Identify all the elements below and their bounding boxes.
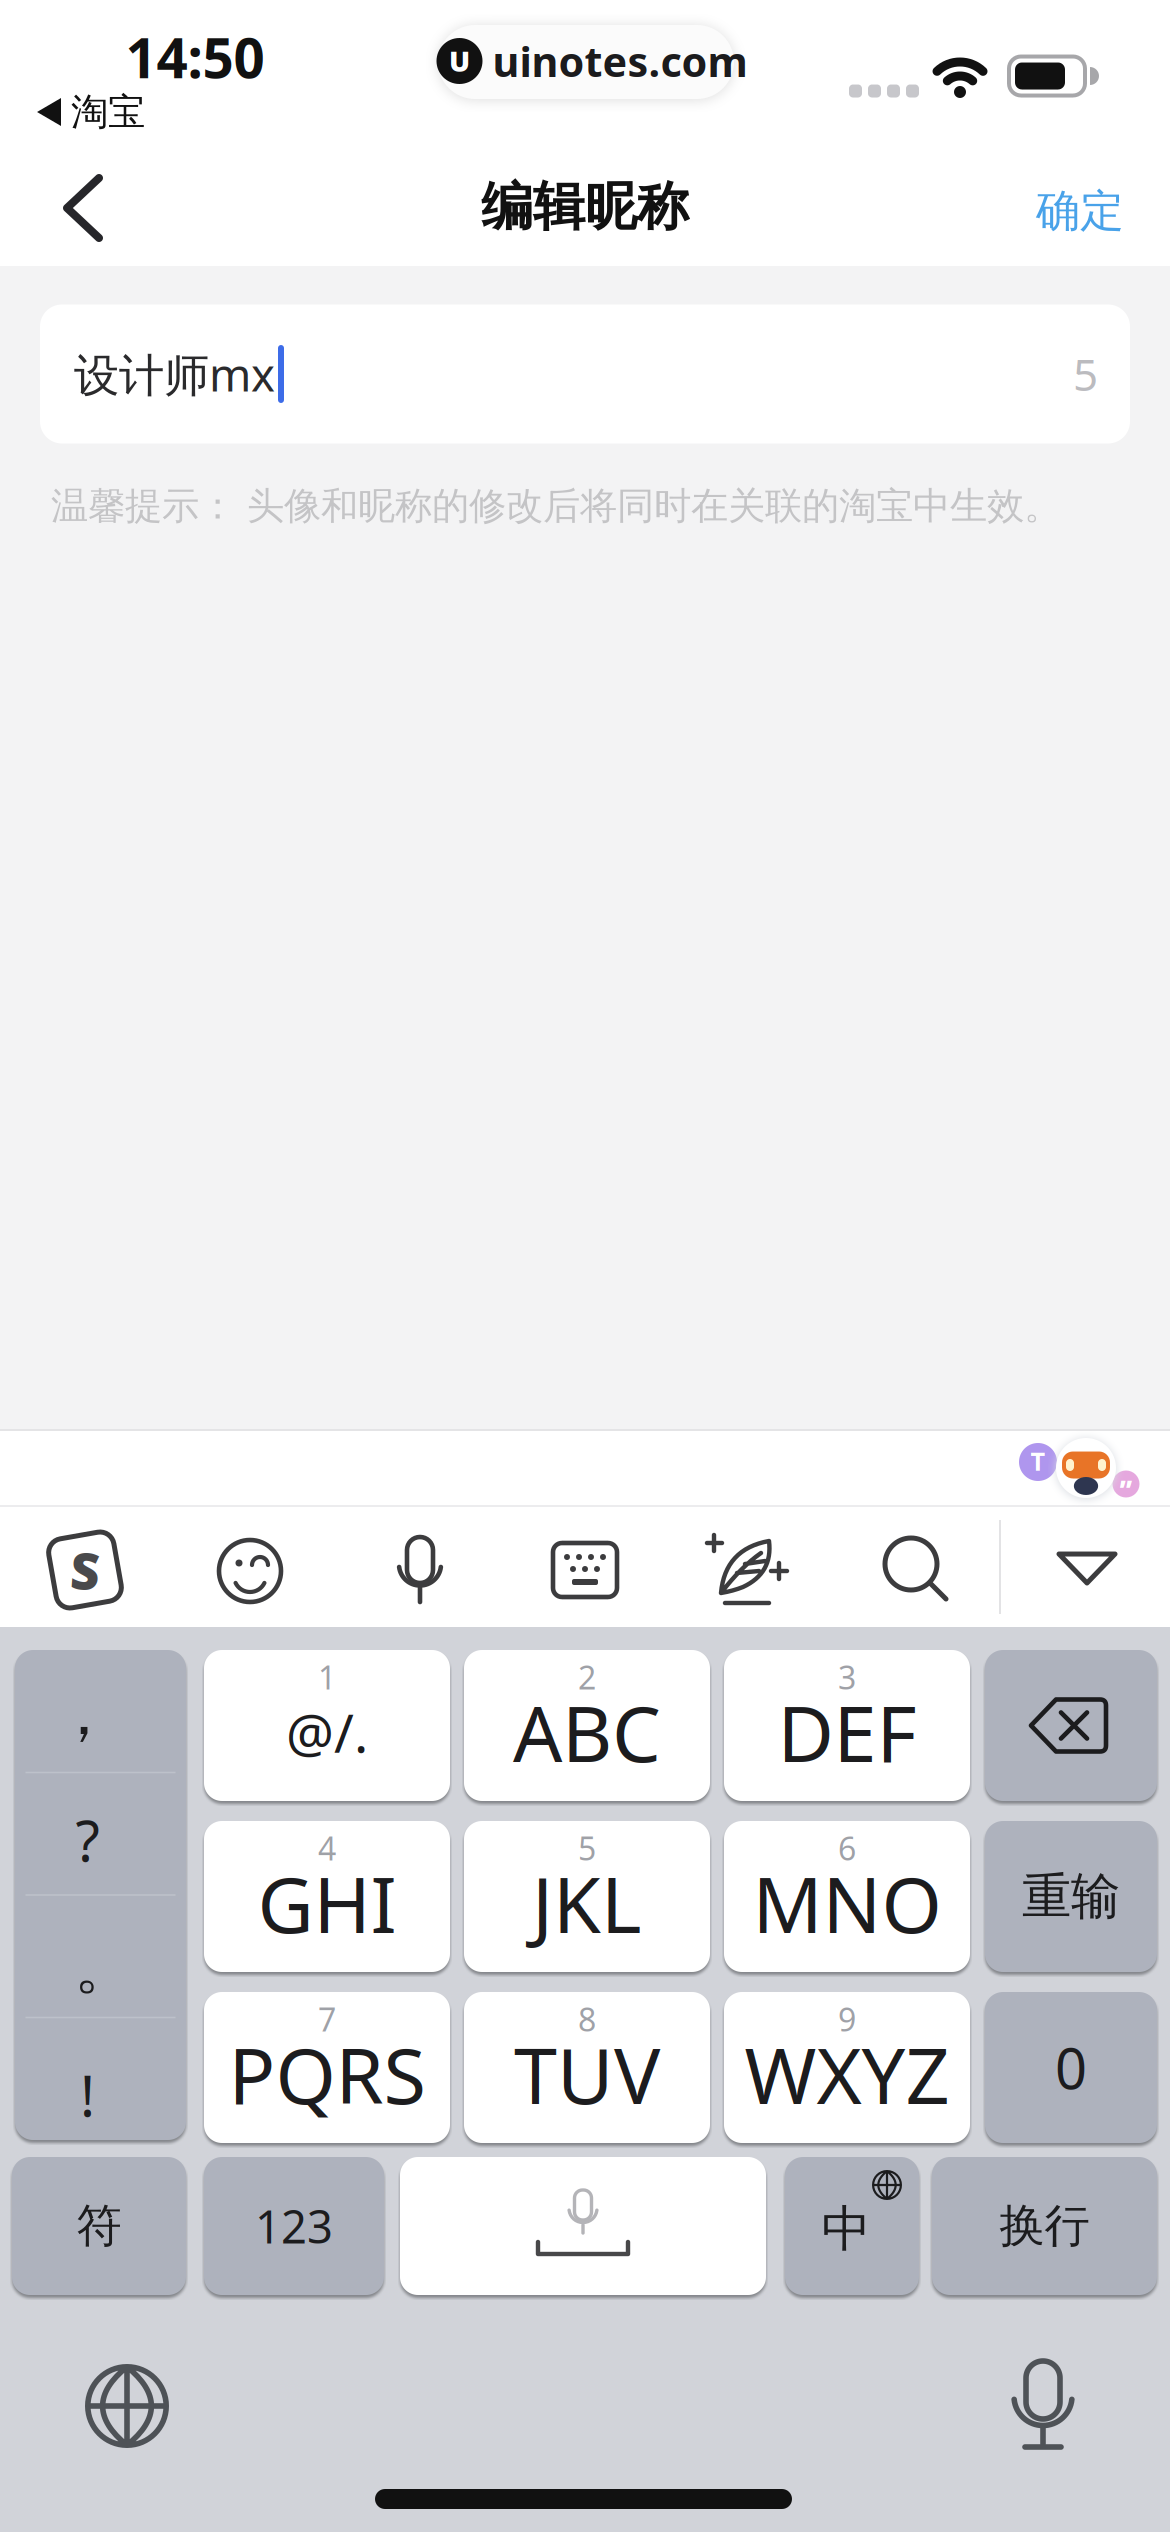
- staticText: uinotes.com: [492, 34, 747, 88]
- button[interactable]: ，: [15, 1650, 186, 1772]
- staticText: 换行: [999, 2198, 1089, 2254]
- button[interactable]: 删除: [985, 1650, 1157, 1801]
- button[interactable]: 空格: [400, 2157, 766, 2295]
- button[interactable]: 重输: [985, 1821, 1157, 1972]
- staticText: 4: [318, 1827, 336, 1869]
- staticText: 14:50: [125, 21, 264, 93]
- staticText: 2: [578, 1656, 596, 1698]
- staticText: 8: [578, 1998, 596, 2040]
- staticText: @/.: [286, 1697, 368, 1767]
- staticText: DEF: [777, 1681, 916, 1783]
- staticText: 1: [318, 1656, 336, 1698]
- staticText: 设计师mx: [74, 344, 275, 404]
- staticText: ，: [53, 1676, 114, 1751]
- staticText: WXYZ: [744, 2023, 949, 2125]
- button[interactable]: DEF: [724, 1650, 970, 1801]
- staticText: 中: [821, 2199, 870, 2259]
- staticText: 7: [318, 1998, 336, 2040]
- staticText: S: [70, 1536, 99, 1604]
- button[interactable]: 符号: [12, 2157, 186, 2295]
- button[interactable]: 收起键盘: [1056, 1551, 1118, 1587]
- staticText: ?: [75, 1803, 99, 1877]
- button[interactable]: JKL: [464, 1821, 710, 1972]
- button[interactable]: WXYZ: [724, 1992, 970, 2143]
- staticText: 符: [76, 2198, 121, 2254]
- button[interactable]: 表情: [215, 1536, 285, 1606]
- button[interactable]: 。: [15, 1895, 186, 2017]
- button[interactable]: 语音听写: [998, 2352, 1088, 2462]
- staticText: 淘宝: [71, 89, 145, 135]
- staticText: GHI: [257, 1852, 396, 1954]
- button[interactable]: 昵称输入框: [40, 304, 1130, 443]
- button[interactable]: 搜索: [882, 1535, 952, 1605]
- staticText: JKL: [532, 1852, 642, 1954]
- staticText: 5: [578, 1827, 596, 1869]
- staticText: 5: [1073, 345, 1098, 403]
- staticText: TUV: [514, 2023, 660, 2125]
- button[interactable]: 换行: [932, 2157, 1157, 2295]
- staticText: 123: [255, 2196, 333, 2256]
- staticText: 9: [838, 1998, 856, 2040]
- button[interactable]: ?: [15, 1773, 186, 1895]
- staticText: !: [80, 2058, 95, 2132]
- button[interactable]: 中文输入: [785, 2157, 919, 2295]
- button[interactable]: GHI: [204, 1821, 450, 1972]
- button[interactable]: TUV: [464, 1992, 710, 2143]
- staticText: 6: [838, 1827, 856, 1869]
- staticText: PQRS: [228, 2023, 425, 2125]
- staticText: 。: [74, 1929, 135, 2004]
- button[interactable]: PQRS: [204, 1992, 450, 2143]
- button[interactable]: ABC: [464, 1650, 710, 1801]
- staticText: MNO: [752, 1852, 941, 1954]
- button[interactable]: 语音输入: [385, 1535, 455, 1605]
- button[interactable]: 智能写作: [707, 1531, 789, 1607]
- staticText: U: [449, 42, 470, 80]
- button[interactable]: 0: [985, 1992, 1157, 2143]
- button[interactable]: @/.: [204, 1650, 450, 1801]
- staticText: ABC: [513, 1681, 661, 1783]
- button[interactable]: 搜狗输入法: [40, 1522, 130, 1618]
- staticText: 温馨提示： 头像和昵称的修改后将同时在关联的淘宝中生效。: [51, 483, 1061, 529]
- button[interactable]: 确定: [1015, 176, 1145, 246]
- staticText: 3: [838, 1656, 856, 1698]
- button[interactable]: 数字: [204, 2157, 384, 2295]
- staticText: 编辑昵称: [481, 175, 689, 239]
- staticText: 确定: [1036, 184, 1124, 238]
- staticText: T: [1030, 1444, 1045, 1478]
- button[interactable]: MNO: [724, 1821, 970, 1972]
- staticText: ”: [1119, 1472, 1132, 1506]
- button[interactable]: !: [15, 2018, 186, 2140]
- button[interactable]: 键盘布局: [550, 1535, 620, 1605]
- staticText: 0: [1055, 2030, 1087, 2105]
- button[interactable]: 返回: [62, 174, 106, 242]
- staticText: 重输: [1022, 1866, 1120, 1927]
- button[interactable]: 返回淘宝: [21, 90, 161, 134]
- button[interactable]: 切换输入法: [77, 2356, 177, 2456]
